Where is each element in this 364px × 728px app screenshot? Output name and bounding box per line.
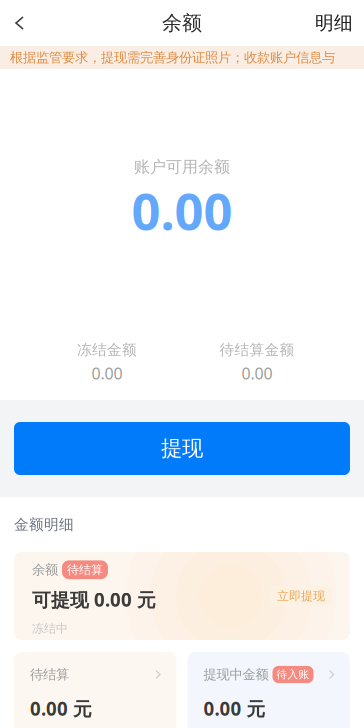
staticText: 冻结中	[32, 621, 68, 636]
button[interactable]: 明细	[301, 0, 364, 46]
staticText: 待入账	[276, 668, 309, 681]
staticText: 待结算	[30, 666, 69, 683]
staticText: 冻结金额	[77, 341, 137, 359]
button[interactable]: 待结算	[14, 652, 176, 728]
button[interactable]: 提现中金额	[187, 652, 350, 728]
staticText: 0.00	[91, 363, 122, 384]
staticText: 金额明细	[14, 515, 74, 533]
button[interactable]: 余额	[14, 552, 350, 640]
staticText: 根据监管要求，提现需完善身份证照片；收款账户信息与	[10, 49, 335, 66]
staticText: 提现中金额	[203, 666, 268, 683]
staticText: 0.00 元	[30, 696, 92, 721]
staticText: 0.00 元	[203, 696, 265, 721]
staticText: 余额	[162, 11, 202, 35]
staticText: 可提现 0.00 元	[32, 587, 156, 612]
staticText: 余额	[32, 561, 58, 578]
button[interactable]: 提现	[14, 422, 350, 475]
staticText: 提现	[161, 435, 203, 462]
staticText: 0.00	[241, 363, 272, 384]
staticText: 0.00	[131, 177, 232, 244]
staticText: 立即提现	[277, 589, 325, 603]
staticText: 明细	[315, 11, 353, 34]
staticText: 待结算金额	[219, 341, 294, 359]
staticText: 账户可用余额	[134, 157, 230, 177]
button[interactable]: Back	[0, 1, 40, 45]
staticText: 待结算	[67, 562, 103, 577]
